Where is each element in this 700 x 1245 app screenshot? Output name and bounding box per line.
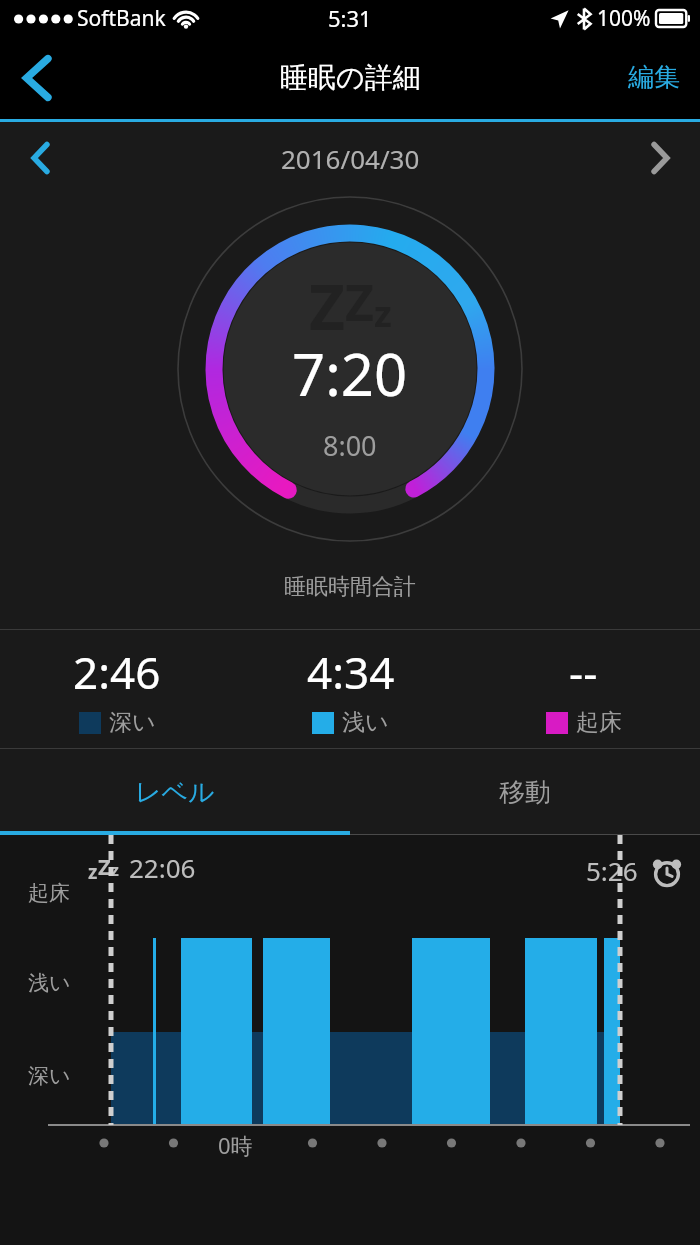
- staticText: z: [88, 859, 98, 885]
- staticText: 睡眠の詳細: [280, 60, 421, 95]
- staticText: 2:46: [73, 642, 161, 702]
- staticText: 2016/04/30: [281, 141, 420, 176]
- staticText: レベル: [135, 776, 215, 809]
- staticText: 7:20: [292, 334, 408, 413]
- staticText: 起床: [576, 708, 622, 737]
- staticText: 8:00: [323, 427, 377, 464]
- staticText: Z: [309, 264, 345, 348]
- staticText: z: [111, 859, 119, 881]
- staticText: SoftBank: [77, 4, 166, 33]
- staticText: 移動: [499, 776, 551, 809]
- staticText: z: [374, 289, 392, 338]
- staticText: Z: [98, 851, 111, 881]
- button[interactable]: --: [467, 630, 700, 748]
- staticText: Z: [345, 268, 374, 336]
- staticText: 浅い: [28, 970, 71, 996]
- button[interactable]: 移動: [350, 749, 700, 835]
- staticText: 編集: [628, 61, 680, 94]
- staticText: 0時: [218, 1130, 253, 1160]
- button[interactable]: 編集: [608, 36, 700, 119]
- staticText: 起床: [28, 880, 70, 906]
- button[interactable]: Previous day: [0, 122, 80, 194]
- staticText: 5:26: [586, 853, 638, 888]
- button[interactable]: 2:46: [0, 630, 234, 748]
- staticText: 深い: [109, 708, 156, 737]
- staticText: 5:31: [328, 3, 372, 33]
- button[interactable]: Back: [0, 36, 74, 119]
- staticText: 100%: [597, 4, 651, 33]
- staticText: 睡眠時間合計: [284, 573, 416, 601]
- staticText: 22:06: [129, 850, 196, 885]
- staticText: 4:34: [307, 642, 395, 702]
- button[interactable]: レベル: [0, 749, 350, 835]
- staticText: 深い: [28, 1063, 71, 1089]
- staticText: --: [569, 642, 598, 702]
- button[interactable]: 4:34: [234, 630, 467, 748]
- button[interactable]: Next day: [620, 122, 700, 194]
- staticText: 浅い: [342, 708, 389, 737]
